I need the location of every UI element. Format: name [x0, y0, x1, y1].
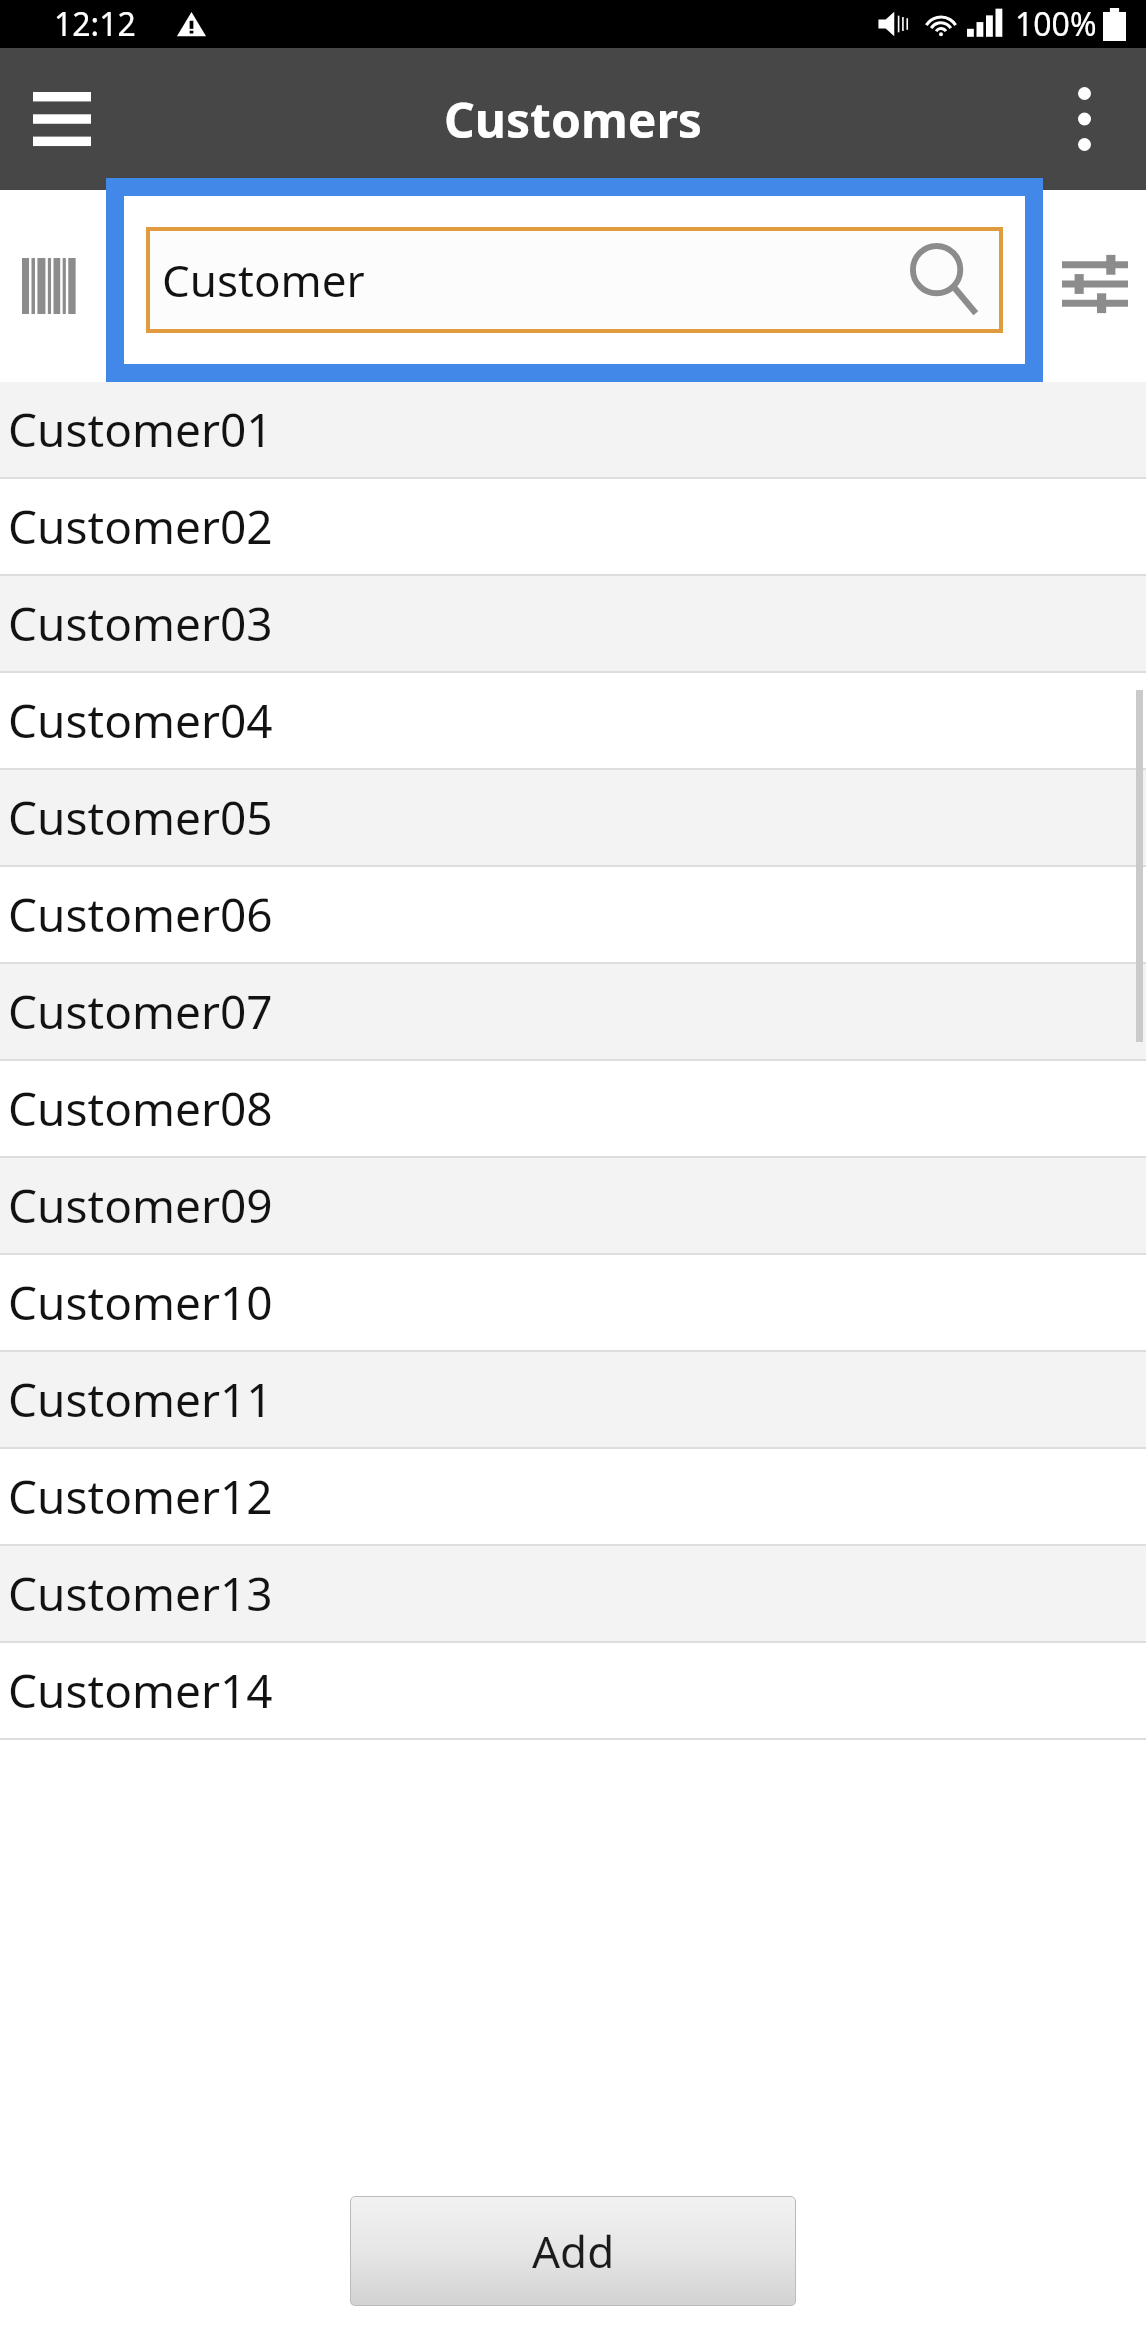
button[interactable]: Customer05 [0, 770, 1146, 867]
button[interactable]: Open navigation menu [10, 67, 114, 171]
staticText: Customers [444, 87, 702, 152]
staticText: 12:12 [54, 2, 136, 46]
button[interactable]: Customer07 [0, 964, 1146, 1061]
staticText: Customer01 [8, 398, 273, 461]
button[interactable]: Customer11 [0, 1352, 1146, 1449]
button[interactable]: Customer09 [0, 1158, 1146, 1255]
staticText: Customer05 [8, 786, 273, 849]
button[interactable]: Customer02 [0, 479, 1146, 576]
button[interactable]: Customer14 [0, 1643, 1146, 1740]
button[interactable]: Filter [1052, 234, 1138, 334]
staticText: Customer08 [8, 1077, 273, 1140]
button[interactable]: Customer08 [0, 1061, 1146, 1158]
staticText: Customer04 [8, 689, 273, 752]
staticText: 100% [1015, 2, 1097, 46]
button[interactable]: Customer06 [0, 867, 1146, 964]
staticText: Customer02 [8, 495, 273, 558]
button[interactable]: Customer04 [0, 673, 1146, 770]
button[interactable]: Customer12 [0, 1449, 1146, 1546]
button[interactable]: More options [1036, 71, 1132, 167]
staticText: Customer12 [8, 1465, 273, 1528]
staticText: Customer11 [8, 1368, 273, 1431]
staticText: Customer10 [8, 1271, 273, 1334]
button[interactable]: Add [350, 2196, 796, 2306]
staticText: Customer13 [8, 1562, 273, 1625]
staticText: Customer03 [8, 592, 273, 655]
staticText: Customer14 [8, 1659, 273, 1722]
staticText: Customer06 [8, 883, 273, 946]
button[interactable]: Customer03 [0, 576, 1146, 673]
staticText: Add [532, 2221, 615, 2281]
button[interactable]: Scan barcode [8, 238, 100, 334]
staticText: Customer09 [8, 1174, 273, 1237]
button[interactable]: Customer [124, 196, 1025, 364]
button[interactable]: Customer01 [0, 382, 1146, 479]
button[interactable]: Customer13 [0, 1546, 1146, 1643]
staticText: Customer [162, 250, 365, 310]
button[interactable]: Customer10 [0, 1255, 1146, 1352]
staticText: Customer07 [8, 980, 273, 1043]
